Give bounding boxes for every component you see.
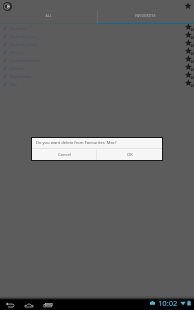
button[interactable]: Remove from favourites — [184, 24, 194, 32]
staticText: 10:02 — [158, 298, 178, 308]
staticText: 4xRadio — [10, 66, 26, 71]
button[interactable]: FM103* — [0, 48, 194, 56]
staticText: FM103* — [10, 50, 25, 55]
button[interactable]: Remove from favourites — [184, 64, 194, 72]
button[interactable]: Remove from favourites — [184, 48, 194, 56]
staticText: Nuernsis — [10, 26, 27, 31]
staticText: Lounabouchiche — [10, 58, 42, 63]
button[interactable]: RadioKey Rock — [0, 40, 194, 48]
button[interactable]: FAVOURITES — [97, 10, 194, 24]
staticText: Runcantha — [10, 74, 31, 79]
button[interactable]: Remove from favourites — [184, 40, 194, 48]
staticText: RadioKey Folk — [10, 34, 37, 39]
button[interactable]: Remove from favourites — [184, 56, 194, 64]
button[interactable]: ALL — [0, 10, 97, 24]
button[interactable]: OK — [97, 149, 162, 160]
button[interactable]: Remove from favourites — [184, 80, 194, 88]
button[interactable]: 4xRadio — [0, 64, 194, 72]
staticText: ALL — [45, 14, 52, 18]
button[interactable]: Status — [150, 298, 191, 308]
button[interactable]: Runcantha — [0, 72, 194, 80]
staticText: RadioKey Rock — [10, 42, 38, 47]
button[interactable]: Remove from favourites — [184, 32, 194, 40]
button[interactable]: Mac — [0, 80, 194, 88]
button[interactable]: Nuernsis — [0, 24, 194, 32]
button[interactable]: Cancel — [32, 149, 96, 160]
button[interactable]: Recents — [43, 301, 53, 308]
button[interactable]: Remove from favourites — [184, 72, 194, 80]
button[interactable]: Favourites — [184, 2, 192, 10]
button[interactable]: Back — [5, 301, 15, 308]
button[interactable]: App icon — [3, 2, 12, 11]
staticText: Mac — [10, 82, 18, 87]
button[interactable]: Home — [24, 301, 34, 308]
button[interactable]: Lounabouchiche — [0, 56, 194, 64]
button[interactable]: RadioKey Folk — [0, 32, 194, 40]
staticText: OK — [127, 152, 133, 158]
staticText: Cancel — [58, 152, 71, 158]
staticText: Do you want delete from Favourites Mac? — [36, 140, 117, 146]
staticText: FAVOURITES — [135, 14, 156, 18]
